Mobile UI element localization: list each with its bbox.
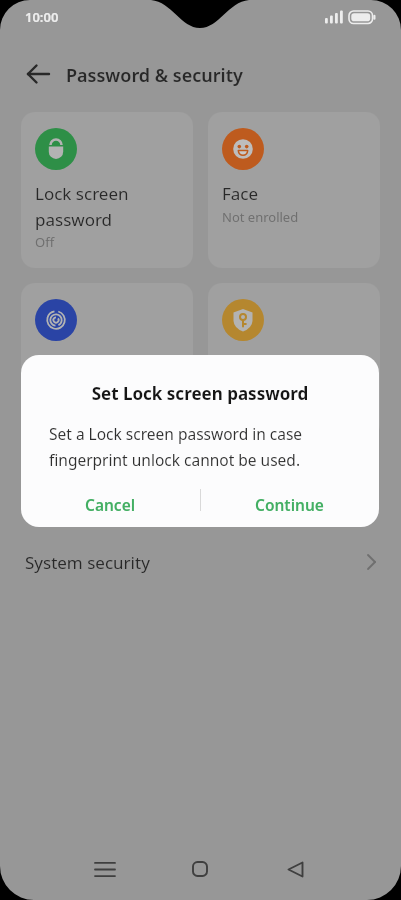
button[interactable] xyxy=(260,845,330,893)
button[interactable] xyxy=(16,54,60,94)
staticText: Not enrolled xyxy=(222,208,299,226)
button[interactable]: Lock screen password xyxy=(21,112,193,268)
staticText: Lock screen password xyxy=(35,182,129,231)
button[interactable] xyxy=(208,283,380,439)
button[interactable] xyxy=(70,845,140,893)
staticText: Password & security xyxy=(66,63,243,88)
button[interactable]: Face xyxy=(208,112,380,268)
staticText: Face xyxy=(222,182,259,205)
staticText: Cancel xyxy=(85,494,136,515)
button[interactable]: System security xyxy=(0,540,401,584)
staticText: Set Lock screen password xyxy=(21,382,379,405)
button[interactable] xyxy=(165,845,235,893)
staticText: 10:00 xyxy=(25,8,59,26)
button[interactable]: Continue xyxy=(200,481,379,527)
button[interactable] xyxy=(21,283,193,439)
staticText: Set a Lock screen password in case finge… xyxy=(49,423,303,471)
staticText: System security xyxy=(25,551,367,574)
button[interactable]: Cancel xyxy=(21,481,200,527)
staticText: Off xyxy=(35,233,55,251)
staticText: Continue xyxy=(255,494,324,515)
